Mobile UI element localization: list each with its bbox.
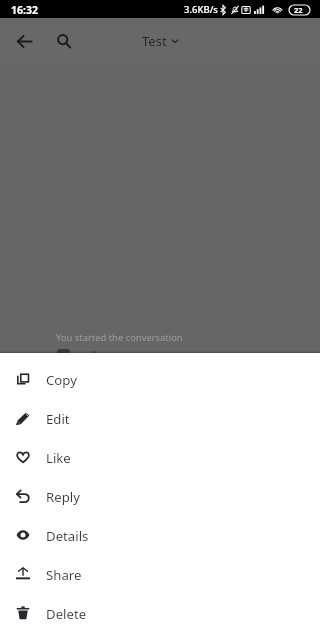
button[interactable]: Reply [0, 476, 320, 515]
button[interactable]: Delete [0, 593, 320, 632]
staticText: 16:32 [11, 3, 38, 17]
staticText: Like [46, 449, 71, 467]
staticText: Reply [46, 488, 80, 506]
button[interactable]: Test [142, 32, 179, 50]
button[interactable]: Like [0, 437, 320, 476]
button[interactable]: Copy [0, 359, 320, 398]
staticText: Details [46, 527, 89, 545]
staticText: Delete [46, 605, 87, 623]
button[interactable]: Search [50, 27, 78, 55]
button[interactable]: Share [0, 554, 320, 593]
button[interactable]: Back [10, 27, 38, 55]
staticText: 22 [294, 5, 303, 15]
button[interactable]: Edit [0, 398, 320, 437]
staticText: Test [142, 32, 167, 50]
staticText: Copy [46, 371, 77, 389]
staticText: You started the conversation [56, 331, 183, 344]
button[interactable]: Details [0, 515, 320, 554]
staticText: Edit [46, 410, 70, 428]
staticText: 3.6KB/s [184, 3, 218, 16]
staticText: Share [46, 566, 82, 584]
